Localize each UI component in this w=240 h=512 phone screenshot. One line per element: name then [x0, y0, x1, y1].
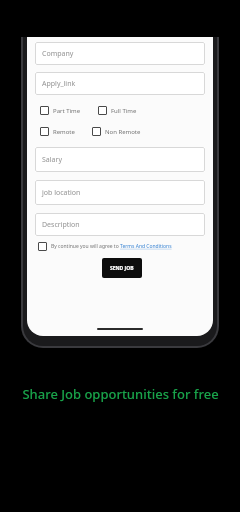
button[interactable]: job location — [35, 180, 205, 205]
button[interactable]: SEND JOB — [102, 258, 142, 278]
staticText: Terms And Conditions — [120, 243, 172, 250]
button[interactable]: Remote — [40, 127, 75, 136]
staticText: Salary — [42, 155, 62, 165]
button[interactable]: Description — [35, 213, 205, 236]
staticText: Part Time — [53, 107, 81, 115]
staticText: Full Time — [111, 107, 137, 115]
staticText: Company — [42, 49, 74, 59]
button[interactable]: Full Time — [98, 106, 137, 115]
button[interactable]: Salary — [35, 147, 205, 172]
staticText: Share Job opportunities for free — [22, 385, 219, 403]
button[interactable]: By continue you will agree to — [38, 242, 205, 251]
staticText: Description — [42, 220, 80, 230]
staticText: SEND JOB — [110, 265, 134, 272]
staticText: Remote — [53, 128, 75, 136]
staticText: job location — [42, 188, 81, 198]
staticText: Apply_link — [42, 79, 76, 89]
button[interactable]: Apply_link — [35, 72, 205, 95]
staticText: By continue you will agree to — [51, 243, 120, 250]
button[interactable]: Non Remote — [92, 127, 141, 136]
button[interactable]: Part Time — [40, 106, 81, 115]
button[interactable]: Company — [35, 42, 205, 65]
staticText: Non Remote — [105, 128, 141, 136]
